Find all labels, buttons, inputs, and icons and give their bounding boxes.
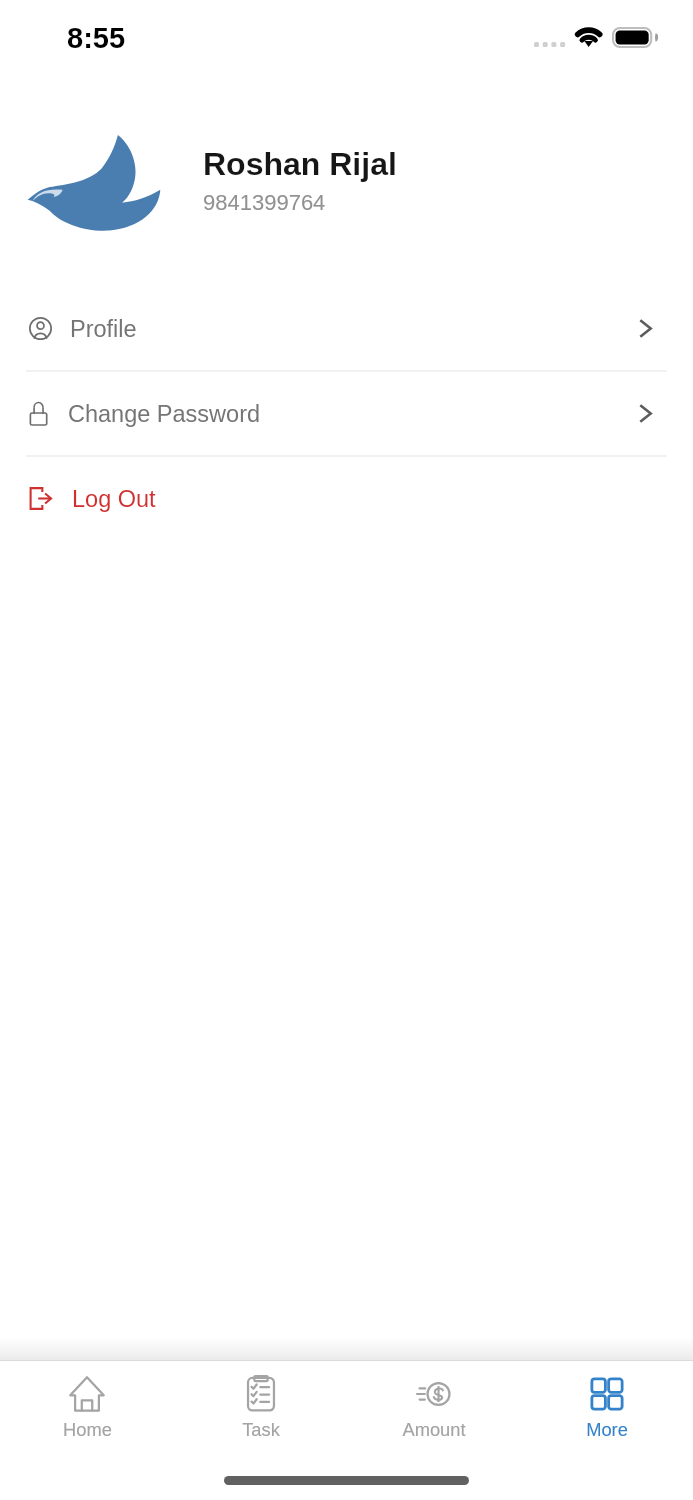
button[interactable]: Amount — [347, 1361, 520, 1456]
button[interactable]: Change Password — [0, 372, 693, 455]
staticText: Amount — [402, 1419, 466, 1439]
staticText: Change Password — [68, 401, 261, 427]
button[interactable]: Log Out — [0, 457, 693, 540]
staticText: Home — [63, 1419, 112, 1439]
staticText: Log Out — [72, 486, 156, 512]
staticText: Roshan Rijal — [203, 146, 397, 182]
staticText: Task — [242, 1419, 280, 1439]
staticText: More — [586, 1419, 628, 1439]
other: Log Out — [29, 487, 52, 510]
other: Open — [639, 319, 652, 338]
button[interactable]: Profile — [0, 287, 693, 370]
button[interactable]: Home — [0, 1361, 174, 1456]
other: Profile — [29, 317, 52, 340]
staticText: 9841399764 — [203, 190, 326, 215]
staticText: Profile — [70, 316, 137, 342]
other: Open — [639, 404, 652, 423]
staticText: 8:55 — [67, 22, 126, 54]
other: Change Password — [29, 402, 52, 425]
button[interactable]: More — [520, 1361, 693, 1456]
button[interactable]: Task — [174, 1361, 347, 1456]
